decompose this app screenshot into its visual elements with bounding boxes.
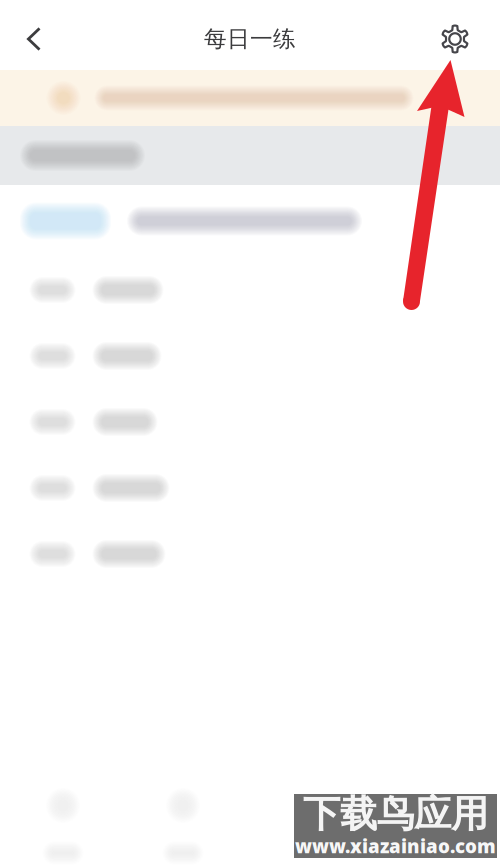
button[interactable]: [0, 455, 500, 521]
staticText: 下载鸟应用: [303, 791, 488, 837]
staticText: www.xiazainiao.com: [295, 834, 496, 858]
staticText: 每日一练: [204, 25, 296, 53]
button[interactable]: Favourite: [26, 789, 100, 863]
button[interactable]: [0, 389, 500, 455]
button[interactable]: Notes: [146, 789, 220, 863]
button[interactable]: [0, 257, 500, 323]
button[interactable]: [0, 323, 500, 389]
button[interactable]: [0, 521, 500, 587]
button[interactable]: Settings: [429, 8, 481, 70]
button[interactable]: Back: [10, 8, 58, 70]
